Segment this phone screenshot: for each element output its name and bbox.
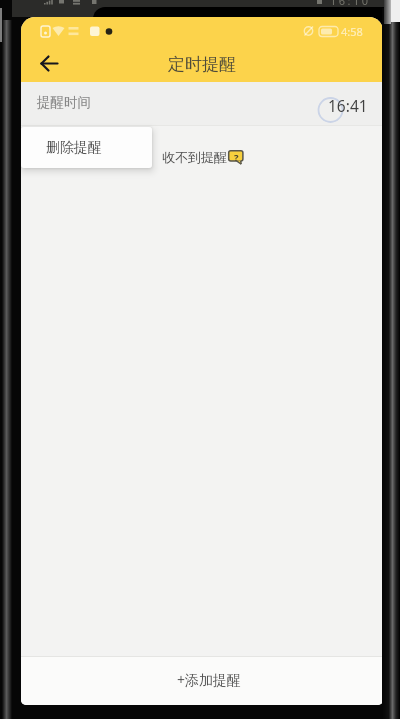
staticText: 删除提醒 <box>46 139 102 157</box>
staticText: 定时提醒 <box>168 54 236 75</box>
staticText: 提醒时间 <box>37 94 91 111</box>
button[interactable]: 删除提醒 <box>21 127 152 168</box>
button[interactable]: +添加提醒 <box>21 656 383 705</box>
staticText: +添加提醒 <box>177 670 242 689</box>
button[interactable] <box>31 47 67 80</box>
button[interactable] <box>21 82 383 125</box>
staticText: 收不到提醒 <box>162 149 227 165</box>
staticText: 16:41 <box>328 95 368 116</box>
staticText: 16:10 <box>330 0 371 8</box>
button[interactable]: ? <box>228 150 245 165</box>
staticText: ? <box>234 151 239 161</box>
staticText: 4:58 <box>341 24 363 39</box>
